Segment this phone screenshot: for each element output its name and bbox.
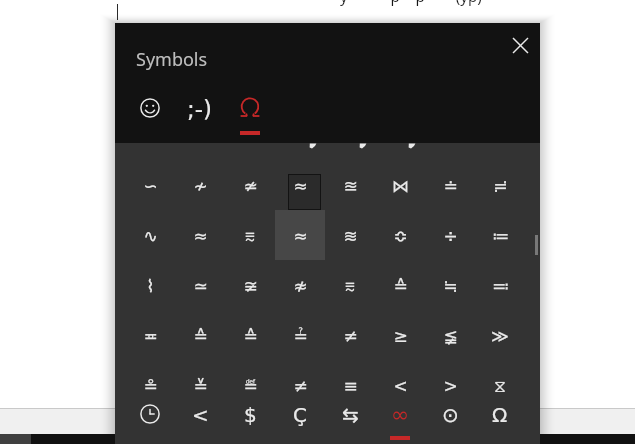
button[interactable]: ≙ — [225, 311, 275, 361]
button[interactable]: ≋ — [325, 211, 375, 261]
staticText: ∞ — [391, 402, 410, 426]
staticText: ≈ — [293, 176, 308, 196]
button[interactable]: ≠ — [325, 311, 375, 361]
button[interactable]: ≔ — [475, 211, 525, 261]
button[interactable]: ≉ — [275, 261, 325, 311]
button[interactable]: Mathematical — [375, 401, 425, 444]
button[interactable]: Currency — [225, 401, 275, 444]
staticText: Ç — [293, 403, 307, 426]
button[interactable]: Emoji — [125, 96, 175, 142]
staticText: y p p (yp) — [340, 0, 482, 6]
staticText: ≨ — [443, 326, 458, 346]
staticText: ∿ — [143, 226, 158, 246]
button[interactable]: ≈ — [175, 211, 225, 261]
button[interactable]: ≙ — [175, 311, 225, 361]
staticText: ⊙ — [442, 403, 459, 426]
button[interactable]: Arrows 2 — [325, 401, 375, 444]
staticText: ≖ — [143, 326, 158, 346]
button[interactable]: ⌇ — [125, 261, 175, 311]
button[interactable]: ⋈ — [375, 161, 425, 211]
staticText: ≝ — [243, 376, 258, 396]
button[interactable]: ≈ — [275, 161, 325, 211]
staticText: ≁ — [193, 176, 208, 196]
button[interactable]: ≄ — [225, 161, 275, 211]
staticText: ≈ — [293, 226, 308, 246]
staticText: ⧖ — [494, 378, 506, 395]
button[interactable]: ≟ — [275, 311, 325, 361]
staticText: ≗ — [143, 376, 158, 396]
staticText: ≕ — [492, 276, 509, 296]
button[interactable]: ≫ — [475, 311, 525, 361]
staticText: ;-) — [187, 96, 213, 120]
button[interactable]: ⩳ — [225, 211, 275, 261]
button[interactable]: Recent — [125, 401, 175, 444]
staticText: < — [192, 403, 209, 426]
button[interactable]: ⧖ — [475, 361, 525, 401]
button[interactable]: ∿ — [125, 211, 175, 261]
staticText: ≙ — [193, 326, 208, 346]
staticText: ÷ — [443, 226, 458, 246]
staticText: ⩳ — [345, 278, 355, 295]
button[interactable]: > — [425, 361, 475, 401]
button[interactable]: ≆ — [225, 261, 275, 311]
button[interactable]: ÷ — [425, 211, 475, 261]
button[interactable]: ≐ — [425, 161, 475, 211]
staticText: ≆ — [243, 276, 258, 296]
staticText: ≙ — [393, 276, 408, 296]
staticText: ≒ — [443, 276, 458, 296]
button[interactable]: ≝ — [225, 361, 275, 401]
button[interactable]: Emoticons — [175, 96, 225, 142]
staticText: ≡ — [343, 376, 358, 396]
staticText: > — [443, 376, 458, 396]
staticText: Ω — [492, 403, 508, 426]
staticText: ≋ — [343, 226, 358, 246]
staticText: ⌇ — [146, 276, 155, 296]
staticText: ≥ — [393, 326, 408, 346]
button[interactable]: ≈ — [275, 211, 325, 261]
staticText: ⋈ — [392, 176, 409, 196]
staticText: ≓ — [493, 176, 508, 196]
button[interactable]: ≎ — [375, 211, 425, 261]
staticText: ≚ — [193, 376, 208, 396]
button[interactable]: ≁ — [175, 161, 225, 211]
button[interactable]: ≥ — [375, 311, 425, 361]
button[interactable]: ∽ — [125, 161, 175, 211]
staticText: ∽ — [143, 176, 158, 196]
button[interactable]: ≓ — [475, 161, 525, 211]
button[interactable]: ≊ — [325, 161, 375, 211]
button[interactable]: Greek — [475, 401, 525, 444]
staticText: < — [393, 376, 408, 396]
button[interactable]: ≡ — [325, 361, 375, 401]
button[interactable]: ≚ — [175, 361, 225, 401]
button[interactable]: ≙ — [375, 261, 425, 311]
staticText: ≐ — [443, 176, 458, 196]
button[interactable]: ≗ — [125, 361, 175, 401]
staticText: Symbols — [136, 47, 208, 72]
staticText: ≟ — [293, 326, 308, 346]
button[interactable]: Latin — [275, 401, 325, 444]
button[interactable]: ≕ — [475, 261, 525, 311]
staticText: ⩳ — [245, 228, 255, 245]
button[interactable]: ⩳ — [325, 261, 375, 311]
button[interactable]: ≖ — [125, 311, 175, 361]
button[interactable]: Close — [504, 29, 536, 61]
staticText: ≊ — [343, 176, 358, 196]
button[interactable]: Geometry — [425, 401, 475, 444]
button[interactable]: Arrows — [175, 401, 225, 444]
staticText: ≙ — [243, 326, 258, 346]
button[interactable]: Symbols — [225, 96, 275, 142]
staticText: ≉ — [293, 276, 308, 296]
staticText: ≎ — [393, 226, 408, 246]
staticText: ≔ — [492, 226, 509, 246]
staticText: ≈ — [193, 226, 208, 246]
button[interactable]: ≒ — [425, 261, 475, 311]
staticText: ≃ — [193, 276, 208, 296]
staticText: ≠ — [293, 376, 308, 396]
staticText: ≫ — [491, 326, 509, 346]
staticText: ≠ — [343, 326, 358, 346]
button[interactable]: ≨ — [425, 311, 475, 361]
button[interactable]: ≃ — [175, 261, 225, 311]
button[interactable]: ≠ — [275, 361, 325, 401]
staticText: ≄ — [243, 176, 258, 196]
button[interactable]: < — [375, 361, 425, 401]
